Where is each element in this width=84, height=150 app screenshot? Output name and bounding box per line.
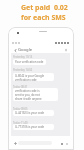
staticText: Today 11:40: [13, 121, 28, 125]
button[interactable]: Back: [12, 47, 18, 53]
staticText: Your verification code: [15, 60, 44, 64]
button[interactable]: G-773106 is your code: [13, 124, 54, 130]
button[interactable]: More options: [63, 47, 69, 53]
staticText: G-441923 is your code: [15, 111, 45, 115]
button[interactable]: verification code is: [13, 88, 58, 101]
staticText: verification code is: [15, 89, 40, 93]
button[interactable]: Your verification code: [13, 59, 46, 65]
staticText: sent to you, do not: [15, 93, 40, 97]
button[interactable]: G-8042 is your Google: [13, 73, 54, 81]
staticText: Google: [18, 47, 33, 53]
staticText: G-773106 is your code: [15, 125, 45, 129]
staticText: Today 09:05: [13, 107, 28, 111]
staticText: Get paid 0.02: [21, 3, 68, 13]
staticText: share it with anyone: [15, 97, 42, 101]
staticText: G-8042 is your Google: [15, 74, 45, 78]
staticText: Yesterday 10:14: [13, 55, 33, 59]
staticText: for each SMS: [21, 13, 66, 23]
button[interactable]: Send: [64, 141, 69, 146]
button[interactable]: Add attachment: [12, 140, 18, 146]
button[interactable]: Emoji: [59, 141, 64, 146]
button[interactable]: G-441923 is your code: [13, 110, 54, 116]
staticText: verification code: [15, 78, 37, 81]
staticText: Yesterday 14:02: [13, 68, 33, 72]
staticText: Today 08:31: [13, 85, 28, 89]
